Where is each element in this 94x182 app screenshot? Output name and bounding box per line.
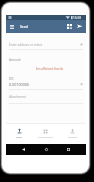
button[interactable]: Scan QR code xyxy=(64,20,75,33)
button[interactable]: Home xyxy=(41,144,52,155)
button[interactable]: Transactions xyxy=(32,124,59,144)
button[interactable]: Send transaction xyxy=(74,20,85,33)
button[interactable]: Menu xyxy=(6,20,18,33)
staticText: Send xyxy=(16,135,22,138)
button[interactable]: Enter address or select xyxy=(9,41,83,48)
staticText: Insufficient funds xyxy=(9,66,63,70)
button[interactable]: Back xyxy=(18,144,29,155)
button[interactable]: Recents xyxy=(63,144,74,155)
staticText: Enter address or select xyxy=(9,43,43,47)
staticText: Attachment xyxy=(9,95,27,99)
button[interactable]: Receive xyxy=(59,124,86,144)
button[interactable]: 0.00100000 xyxy=(9,81,83,87)
staticText: BTC xyxy=(9,77,14,81)
staticText: Receive xyxy=(68,135,77,138)
staticText: 15:38 xyxy=(73,16,81,20)
staticText: 0.00100000 xyxy=(9,82,29,87)
staticText: Amount xyxy=(9,58,21,62)
staticText: Send xyxy=(20,24,28,29)
staticText: Transactions xyxy=(38,135,53,138)
button[interactable]: Send xyxy=(6,124,32,144)
